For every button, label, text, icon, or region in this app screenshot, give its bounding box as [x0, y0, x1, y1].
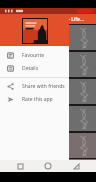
button[interactable]: Details: [0, 62, 69, 75]
staticText: Rate this app: [22, 96, 53, 103]
staticText: Details: [22, 65, 39, 72]
button[interactable]: Rate this app: [0, 93, 69, 106]
button[interactable]: Recent apps: [12, 160, 28, 172]
button[interactable]: Favourite: [0, 49, 69, 62]
staticText: Favourite: [22, 52, 45, 59]
button[interactable]: Back: [68, 160, 84, 172]
button[interactable]: Home: [40, 160, 56, 172]
staticText: Share with friends: [22, 83, 65, 90]
staticText: h – Life…: [63, 16, 84, 23]
button[interactable]: Share with friends: [0, 80, 69, 93]
